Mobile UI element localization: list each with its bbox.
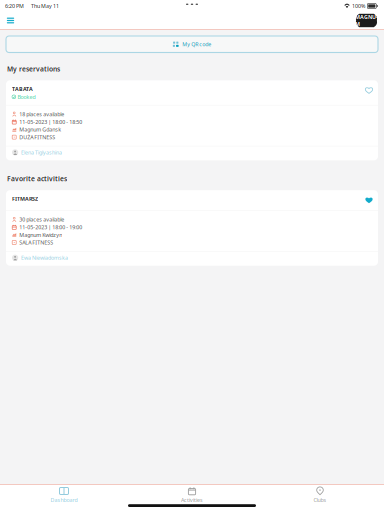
staticText: MAGNUM xyxy=(355,13,378,28)
button[interactable]: Add to favourites xyxy=(362,80,372,94)
staticText: Clubs xyxy=(313,496,326,504)
button[interactable]: Dashboard xyxy=(0,487,128,504)
staticText: SALA FITNESS xyxy=(19,239,53,246)
button[interactable]: Activities xyxy=(128,487,256,504)
staticText: Magnum Gdansk xyxy=(19,126,61,133)
button[interactable]: Menu xyxy=(3,12,18,28)
staticText: 11-05-2023 | 18:00 - 19:00 xyxy=(19,224,82,231)
staticText: 100% xyxy=(352,2,365,10)
staticText: 11-05-2023 | 18:00 - 18:50 xyxy=(19,118,82,125)
staticText: My reservations xyxy=(7,64,60,73)
button[interactable]: My QR code xyxy=(6,36,378,52)
staticText: FITMARSZ xyxy=(12,195,38,202)
staticText: Magnum Kwidzyn xyxy=(19,231,62,238)
button[interactable]: Remove from favourites xyxy=(362,190,372,204)
staticText: Dashboard xyxy=(50,496,77,504)
staticText: My QR code xyxy=(182,41,211,48)
staticText: Elena Tiglyashina xyxy=(21,149,62,156)
staticText: 6:20 PM xyxy=(5,2,24,10)
staticText: Ewa Niewiadomska xyxy=(21,254,68,261)
staticText: Activities xyxy=(181,496,203,504)
staticText: Booked xyxy=(18,93,36,100)
staticText: Favorite activities xyxy=(7,174,67,183)
staticText: 18 places available xyxy=(19,111,64,118)
button[interactable]: Magnum xyxy=(355,13,378,28)
staticText: TABATA xyxy=(12,85,33,92)
staticText: 30 places available xyxy=(19,216,64,223)
button[interactable]: Clubs xyxy=(256,487,384,504)
staticText: Thu May 11 xyxy=(31,2,59,10)
staticText: DUŻA FITNESS xyxy=(19,134,55,141)
